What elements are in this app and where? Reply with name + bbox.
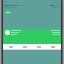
button[interactable] — [5, 10, 11, 14]
button[interactable]: Nav item — [4, 44, 18, 49]
button[interactable]: Profile — [5, 30, 10, 35]
button[interactable]: Nav item — [32, 44, 46, 49]
button[interactable]: Nav item — [18, 44, 32, 49]
button[interactable]: Nav item — [46, 44, 60, 49]
